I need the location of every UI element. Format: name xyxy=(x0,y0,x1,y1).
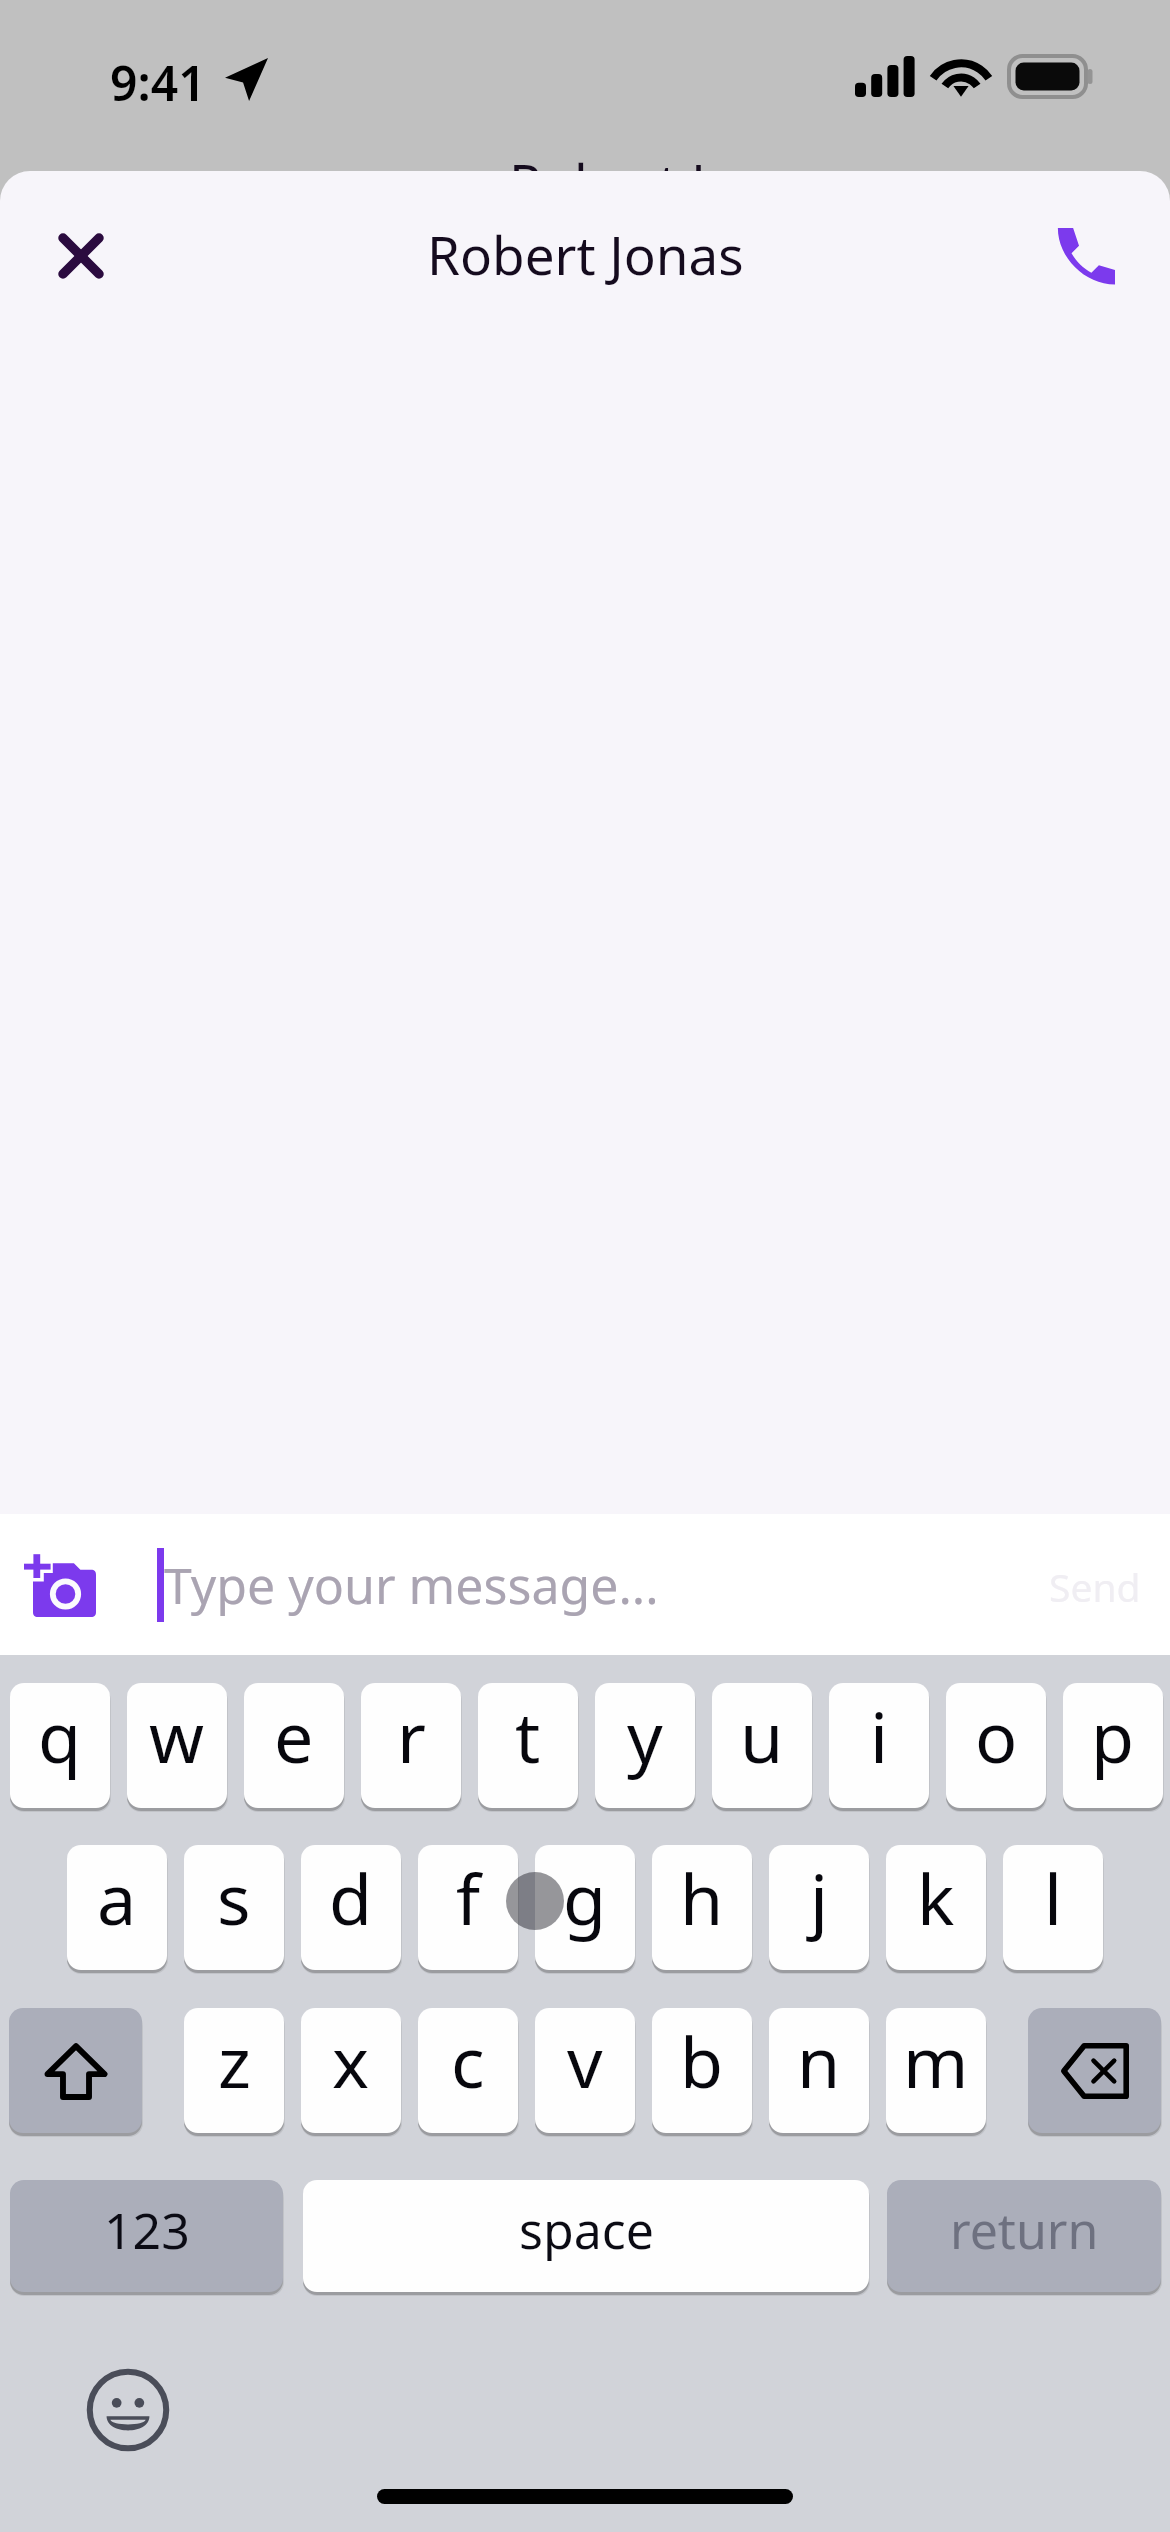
staticText: e xyxy=(274,1688,314,1783)
staticText: i xyxy=(870,1688,889,1783)
button[interactable]: 123 xyxy=(10,2180,283,2292)
staticText: p xyxy=(1091,1688,1135,1783)
button[interactable]: Call xyxy=(1044,214,1128,298)
staticText: b xyxy=(680,2013,724,2108)
staticText: x xyxy=(332,2013,370,2108)
button[interactable]: space xyxy=(303,2180,869,2292)
button[interactable]: g xyxy=(535,1845,635,1970)
staticText: f xyxy=(456,1850,481,1945)
button[interactable]: y xyxy=(595,1683,695,1808)
staticText: Send xyxy=(1049,1560,1141,1613)
staticText: u xyxy=(740,1688,784,1783)
button[interactable]: o xyxy=(946,1683,1046,1808)
staticText: Robert Jonas xyxy=(427,218,744,290)
staticText: k xyxy=(917,1850,955,1945)
staticText: n xyxy=(797,2013,841,2108)
button[interactable]: m xyxy=(886,2008,986,2133)
staticText: q xyxy=(38,1688,82,1783)
button[interactable]: s xyxy=(184,1845,284,1970)
staticText: w xyxy=(149,1688,205,1783)
staticText: return xyxy=(950,2196,1099,2264)
staticText: c xyxy=(451,2013,485,2108)
button[interactable]: Close xyxy=(39,214,123,298)
button[interactable]: u xyxy=(712,1683,812,1808)
button[interactable]: x xyxy=(301,2008,401,2133)
button[interactable]: n xyxy=(769,2008,869,2133)
button[interactable]: l xyxy=(1003,1845,1103,1970)
staticText: h xyxy=(680,1850,724,1945)
button[interactable]: j xyxy=(769,1845,869,1970)
staticText: l xyxy=(1044,1850,1063,1945)
staticText: 9:41 xyxy=(110,50,206,115)
button[interactable]: Shift xyxy=(9,2008,142,2133)
button[interactable]: q xyxy=(10,1683,110,1808)
staticText: v xyxy=(567,2013,603,2108)
staticText: d xyxy=(329,1850,373,1945)
button[interactable]: return xyxy=(887,2180,1161,2292)
button[interactable]: e xyxy=(244,1683,344,1808)
staticText: m xyxy=(903,2013,969,2108)
staticText: t xyxy=(515,1688,541,1783)
button[interactable]: f xyxy=(418,1845,518,1970)
button[interactable]: d xyxy=(301,1845,401,1970)
button[interactable]: w xyxy=(127,1683,227,1808)
staticText: r xyxy=(397,1688,426,1783)
staticText: s xyxy=(217,1850,251,1945)
staticText: o xyxy=(975,1688,1018,1783)
button[interactable]: Add photo xyxy=(10,1537,110,1633)
button[interactable]: v xyxy=(535,2008,635,2133)
button[interactable]: Send xyxy=(1042,1536,1170,1633)
button[interactable]: c xyxy=(418,2008,518,2133)
staticText: a xyxy=(97,1850,137,1945)
button[interactable]: z xyxy=(184,2008,284,2133)
button[interactable]: a xyxy=(67,1845,167,1970)
button[interactable]: h xyxy=(652,1845,752,1970)
button[interactable]: b xyxy=(652,2008,752,2133)
button[interactable]: Backspace xyxy=(1028,2008,1161,2133)
button[interactable]: t xyxy=(478,1683,578,1808)
button[interactable]: Type your message... xyxy=(140,1530,1030,1640)
staticText: z xyxy=(218,2013,251,2108)
staticText: 123 xyxy=(104,2196,190,2264)
button[interactable]: i xyxy=(829,1683,929,1808)
staticText: space xyxy=(519,2196,654,2264)
staticText: j xyxy=(810,1850,829,1945)
staticText: y xyxy=(627,1688,663,1783)
button[interactable]: k xyxy=(886,1845,986,1970)
button[interactable]: p xyxy=(1063,1683,1163,1808)
staticText: g xyxy=(563,1850,607,1945)
staticText: Type your message... xyxy=(164,1551,659,1619)
button[interactable]: Emoji keyboard xyxy=(86,2368,170,2452)
staticText: Robert Jonas xyxy=(509,146,826,218)
button[interactable]: r xyxy=(361,1683,461,1808)
